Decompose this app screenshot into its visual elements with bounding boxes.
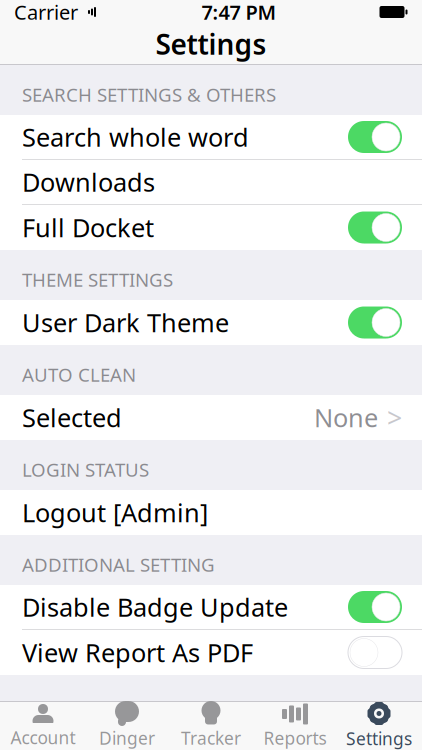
button[interactable]: View Report As PDF (0, 630, 422, 675)
button[interactable]: Tracker (169, 702, 253, 750)
staticText: Reports (263, 726, 326, 749)
staticText: User Dark Theme (22, 306, 229, 339)
button[interactable]: Downloads (0, 160, 422, 205)
staticText: Full Docket (22, 211, 154, 244)
button[interactable]: User Dark Theme (0, 300, 422, 345)
staticText: Tracker (181, 726, 241, 749)
staticText: Settings (155, 25, 266, 63)
staticText: LOGIN STATUS (22, 457, 149, 482)
staticText: Search whole word (22, 120, 249, 154)
button[interactable]: Disable Badge Update (0, 585, 422, 630)
staticText: THEME SETTINGS (22, 267, 173, 292)
staticText: Dinger (99, 726, 155, 749)
staticText: Account (10, 726, 75, 749)
button[interactable]: Full Docket (0, 205, 422, 250)
staticText: Carrier (14, 0, 78, 25)
staticText: ADDITIONAL SETTING (22, 552, 215, 577)
staticText: View Report As PDF (22, 636, 253, 669)
staticText: Settings (346, 727, 412, 750)
staticText: None (314, 401, 378, 434)
staticText: Selected (22, 401, 122, 434)
button[interactable]: Settings (337, 702, 421, 750)
staticText: 7:47 PM (201, 0, 276, 25)
button[interactable]: Search whole word (0, 115, 422, 160)
button[interactable]: Account (1, 702, 85, 750)
button[interactable]: Dinger (85, 702, 169, 750)
button[interactable]: Logout [Admin] (0, 490, 422, 535)
button[interactable]: Reports (253, 702, 337, 750)
staticText: SEARCH SETTINGS & OTHERS (22, 82, 276, 107)
button[interactable]: Selected (0, 395, 422, 440)
staticText: AUTO CLEAN (22, 362, 136, 387)
staticText: Disable Badge Update (22, 590, 288, 624)
staticText: Logout [Admin] (22, 496, 208, 529)
staticText: Downloads (22, 165, 155, 199)
staticText: > (387, 400, 402, 435)
